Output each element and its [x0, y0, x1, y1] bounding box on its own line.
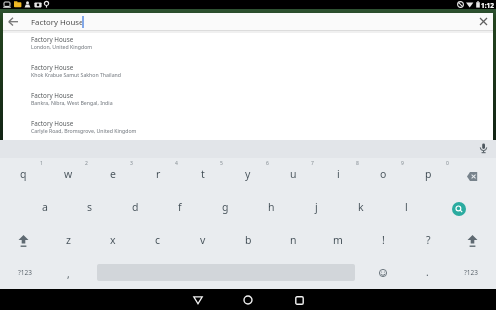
staticText: p	[425, 167, 432, 181]
button[interactable]: b	[218, 226, 278, 254]
staticText: Factory House	[31, 17, 84, 28]
staticText: s	[87, 200, 93, 214]
button[interactable]: Factory House	[3, 88, 493, 116]
staticText: k	[358, 200, 364, 214]
button[interactable]: s	[60, 193, 120, 221]
staticText: 2	[85, 160, 88, 167]
staticText: Factory House	[31, 119, 74, 128]
staticText: 1:12	[481, 1, 494, 10]
button[interactable]	[9, 230, 37, 252]
button[interactable]	[186, 289, 210, 310]
staticText: ?	[426, 233, 431, 247]
button[interactable]: h	[241, 193, 301, 221]
staticText: t	[201, 167, 205, 181]
button[interactable]	[479, 17, 488, 26]
staticText: a	[42, 200, 48, 214]
staticText: 5	[220, 160, 223, 167]
staticText: 0	[446, 160, 449, 167]
staticText: 1	[40, 160, 43, 167]
button[interactable]	[479, 143, 488, 154]
staticText: 8	[356, 160, 359, 167]
button[interactable]: d	[105, 193, 165, 221]
button[interactable]	[236, 289, 260, 310]
staticText: u	[290, 167, 297, 181]
button[interactable]: ?	[398, 226, 458, 254]
staticText: i	[337, 167, 340, 181]
staticText: o	[380, 167, 387, 181]
staticText: v	[200, 233, 206, 247]
button[interactable]: ?123	[441, 258, 496, 286]
button[interactable]	[458, 230, 486, 252]
button[interactable]: k	[331, 193, 391, 221]
staticText: r	[156, 167, 161, 181]
button[interactable]: p	[398, 160, 458, 188]
button[interactable]: f	[150, 193, 210, 221]
button[interactable]: Factory House	[3, 116, 493, 144]
staticText: j	[315, 200, 318, 214]
staticText: g	[222, 200, 229, 214]
button[interactable]: n	[263, 226, 323, 254]
staticText: 7	[311, 160, 314, 167]
button[interactable]	[3, 13, 493, 30]
staticText: h	[268, 200, 275, 214]
button[interactable]	[287, 289, 311, 310]
staticText: 9	[401, 160, 404, 167]
staticText: 3	[130, 160, 133, 167]
button[interactable]	[8, 17, 19, 27]
staticText: l	[405, 200, 408, 214]
staticText: q	[20, 167, 27, 181]
staticText: ?123	[464, 268, 478, 277]
button[interactable]: j	[286, 193, 346, 221]
staticText: Factory House	[31, 35, 74, 44]
button[interactable]: a	[15, 193, 75, 221]
button[interactable]: q	[0, 160, 53, 188]
button[interactable]	[447, 197, 471, 221]
staticText: Factory House	[31, 63, 74, 72]
staticText: e	[110, 167, 116, 181]
button[interactable]: !	[353, 226, 413, 254]
staticText: 4	[175, 160, 178, 167]
staticText: Factory House	[31, 91, 74, 100]
staticText: w	[64, 167, 73, 181]
button[interactable]	[458, 164, 486, 188]
button[interactable]: x	[83, 226, 143, 254]
staticText: b	[245, 233, 252, 247]
button[interactable]: c	[128, 226, 188, 254]
button[interactable]: t	[173, 160, 233, 188]
button[interactable]: Factory House	[3, 32, 493, 60]
staticText: x	[110, 233, 116, 247]
button[interactable]: r	[128, 160, 188, 188]
button[interactable]: i	[308, 160, 368, 188]
staticText: .	[426, 265, 429, 279]
button[interactable]: e	[83, 160, 143, 188]
staticText: y	[245, 167, 251, 181]
staticText: Carlyle Road, Bromsgrove, United Kingdom	[31, 127, 137, 134]
button[interactable]: .	[397, 258, 457, 286]
button[interactable]: l	[376, 193, 436, 221]
staticText: ?123	[18, 268, 32, 277]
button[interactable]: ,	[38, 260, 98, 288]
staticText: n	[290, 233, 297, 247]
staticText: Bankra, Nibra, West Bengal, India	[31, 99, 113, 106]
button[interactable]: ?123	[0, 258, 55, 286]
button[interactable]: z	[38, 226, 98, 254]
button[interactable]: v	[173, 226, 233, 254]
staticText: z	[66, 233, 71, 247]
staticText: London, United Kingdom	[31, 43, 93, 50]
button[interactable]: m	[308, 226, 368, 254]
button[interactable]: Factory House	[3, 60, 493, 88]
button[interactable]	[371, 261, 395, 285]
staticText: 6	[266, 160, 269, 167]
staticText: ,	[67, 267, 70, 281]
button[interactable]: g	[195, 193, 255, 221]
staticText: c	[155, 233, 161, 247]
staticText: m	[333, 233, 343, 247]
staticText: d	[132, 200, 139, 214]
staticText: Khok Krabue Samut Sakhon Thailand	[31, 71, 121, 78]
button[interactable]: y	[218, 160, 278, 188]
staticText: f	[178, 200, 182, 214]
button[interactable]: u	[263, 160, 323, 188]
button[interactable]: o	[353, 160, 413, 188]
button[interactable]: w	[38, 160, 98, 188]
